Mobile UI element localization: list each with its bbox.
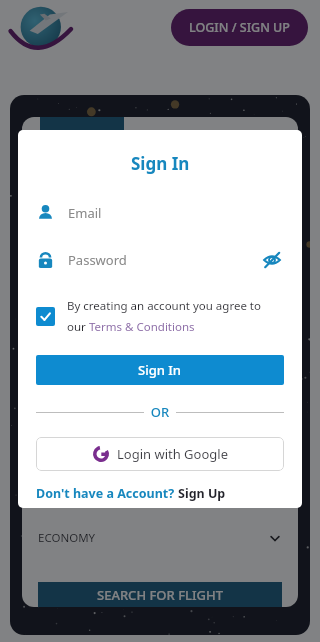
staticText: ECONOMY — [38, 530, 96, 546]
button[interactable]: Don't have a Account? — [36, 485, 226, 502]
button[interactable]: By creating an account you agree to — [36, 298, 284, 335]
staticText: Sign Up — [178, 485, 226, 502]
staticText: SEARCH FOR FLIGHT — [97, 586, 224, 604]
button[interactable]: Terms & Conditions — [89, 319, 195, 335]
staticText: LOGIN / SIGN UP — [189, 19, 290, 36]
staticText: Password — [68, 251, 127, 269]
staticText: Terms & Conditions — [89, 319, 195, 335]
button[interactable]: LOGIN / SIGN UP — [171, 9, 308, 46]
staticText: our — [67, 319, 89, 335]
staticText: OR — [144, 403, 176, 421]
button[interactable]: Login with Google — [36, 437, 284, 471]
staticText: Email — [68, 204, 102, 222]
button[interactable]: SEARCH FOR FLIGHT — [38, 582, 282, 607]
button[interactable]: Sign In — [36, 355, 284, 385]
button[interactable]: Password — [36, 248, 284, 272]
staticText: Sign In — [138, 361, 182, 379]
button[interactable]: Toggle password visibility — [260, 248, 284, 272]
staticText: Login with Google — [117, 445, 228, 463]
staticText: By creating an account you agree to — [67, 298, 261, 314]
other: AATI logo — [12, 3, 76, 51]
staticText: Don't have a Account? — [36, 485, 178, 502]
staticText: Sign In — [131, 152, 190, 175]
button[interactable]: Email — [36, 203, 284, 222]
